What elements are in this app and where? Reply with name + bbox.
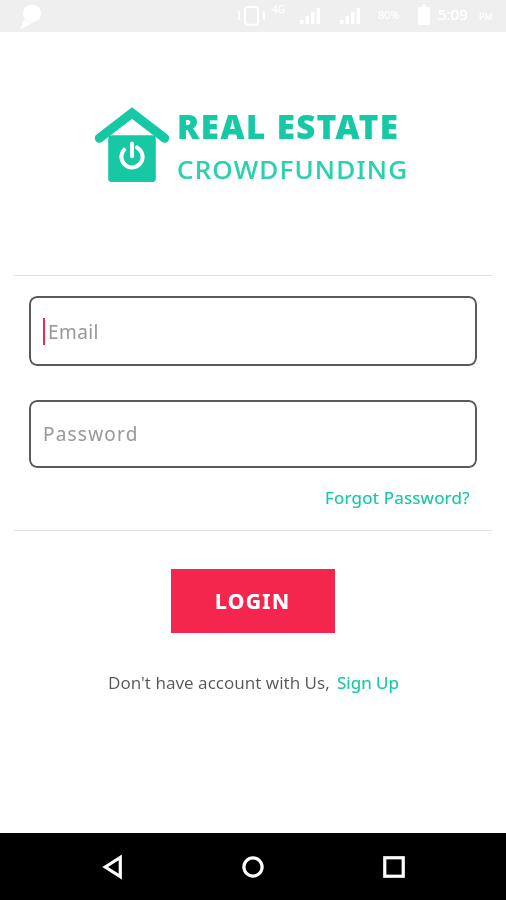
staticText: Password <box>43 421 139 447</box>
staticText: Forgot Password? <box>325 486 470 509</box>
button[interactable]: Email <box>29 296 477 366</box>
button[interactable]: Forgot Password? <box>325 482 506 513</box>
staticText: 4G <box>272 2 285 16</box>
staticText: PM <box>479 10 493 22</box>
other: Logo <box>98 109 166 182</box>
button[interactable]: Password <box>29 400 477 468</box>
staticText: CROWDFUNDING <box>177 151 409 186</box>
staticText: REAL ESTATE <box>177 104 400 149</box>
staticText: Don't have account with Us, <box>108 671 330 694</box>
button[interactable]: Sign Up <box>337 671 399 694</box>
staticText: Email <box>48 319 99 345</box>
staticText: 80% <box>378 7 400 22</box>
button[interactable]: LOGIN <box>171 569 335 633</box>
staticText: Sign Up <box>337 671 399 694</box>
staticText: LOGIN <box>215 587 291 616</box>
button[interactable]: Recent apps <box>366 839 422 895</box>
button[interactable]: Home <box>225 839 281 895</box>
button[interactable]: Back <box>85 839 141 895</box>
staticText: 5:09 <box>438 4 468 24</box>
